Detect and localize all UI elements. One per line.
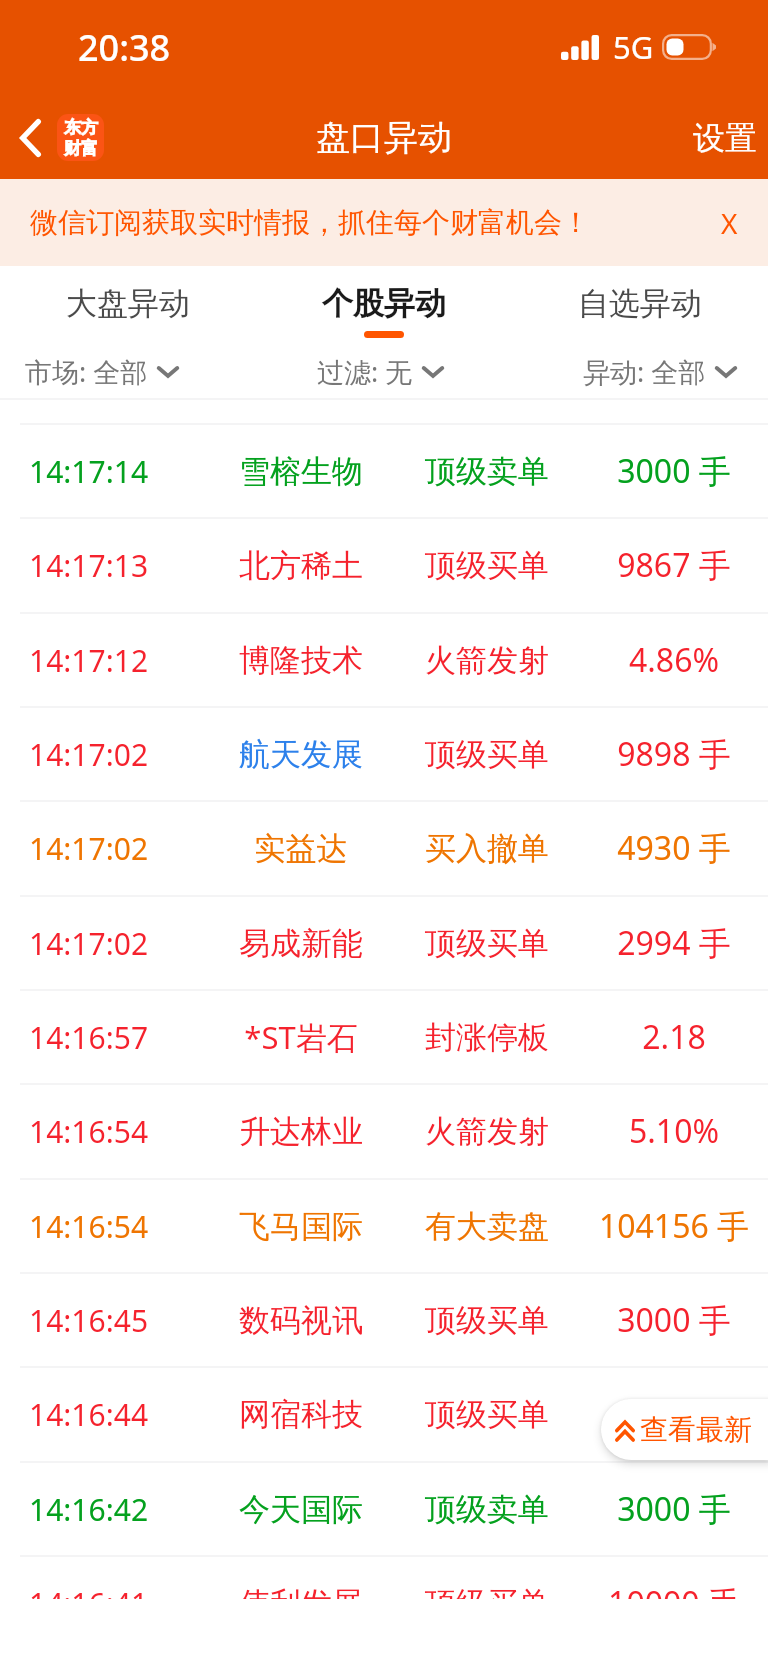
staticText: 2994 手 xyxy=(549,921,768,965)
button[interactable]: 市场: 全部 xyxy=(0,344,232,398)
staticText: 9898 手 xyxy=(549,732,768,776)
button[interactable]: 14:16:42 xyxy=(0,1462,768,1556)
staticText: 火箭发射 xyxy=(362,1112,612,1151)
button[interactable]: 14:17:14 xyxy=(0,424,768,518)
staticText: 伟利发展 xyxy=(176,1584,426,1599)
staticText: 查看最新 xyxy=(640,1412,752,1447)
staticText: 航天发展 xyxy=(176,735,426,774)
button[interactable]: Back xyxy=(14,108,110,167)
button[interactable]: 14:17:02 xyxy=(0,801,768,895)
button[interactable]: 14:16:45 xyxy=(0,1273,768,1367)
staticText: 3000 手 xyxy=(549,1298,768,1342)
staticText: 设置 xyxy=(693,118,757,158)
staticText: 封涨停板 xyxy=(362,1018,612,1057)
staticText: 14:16:41 xyxy=(29,1583,149,1599)
staticText: 顶级买单 xyxy=(362,735,612,774)
staticText: 3000 手 xyxy=(549,1487,768,1531)
button[interactable]: 14:17:02 xyxy=(0,707,768,801)
button[interactable]: 设置 xyxy=(669,108,768,168)
staticText: 东方 xyxy=(64,117,98,138)
staticText: 个股异动 xyxy=(322,284,446,323)
staticText: 顶级买单 xyxy=(362,924,612,963)
staticText: 升达林业 xyxy=(176,1112,426,1151)
staticText: 异动: 全部 xyxy=(583,353,706,390)
staticText: 2.18 xyxy=(549,1015,768,1059)
staticText: 14:17:14 xyxy=(29,451,149,492)
staticText: 有大卖盘 xyxy=(362,1207,612,1246)
staticText: 顶级卖单 xyxy=(362,1490,612,1529)
staticText: 顶级买单 xyxy=(362,1395,612,1434)
button[interactable]: 14:17:12 xyxy=(0,613,768,707)
staticText: 网宿科技 xyxy=(176,1395,426,1434)
staticText: 顶级买单 xyxy=(362,546,612,585)
staticText: 14:17:02 xyxy=(29,734,149,775)
staticText: 易成新能 xyxy=(176,924,426,963)
staticText: 飞马国际 xyxy=(176,1207,426,1246)
staticText: 14:16:45 xyxy=(29,1300,149,1341)
staticText: 微信订阅获取实时情报，抓住每个财富机会！ xyxy=(30,205,590,240)
button[interactable]: 查看最新 xyxy=(601,1399,768,1460)
staticText: 14:16:54 xyxy=(29,1206,149,1247)
staticText: 北方稀土 xyxy=(176,546,426,585)
button[interactable]: 14:16:41 xyxy=(0,1556,768,1599)
staticText: 盘口异动 xyxy=(316,116,452,159)
staticText: *ST岩石 xyxy=(176,1016,426,1058)
staticText: 雪榕生物 xyxy=(176,452,426,491)
staticText: 自选异动 xyxy=(578,284,702,323)
staticText: 顶级买单 xyxy=(362,1301,612,1340)
staticText: 9867 手 xyxy=(549,543,768,587)
staticText: 10000 手 xyxy=(549,1581,768,1599)
staticText: 今天国际 xyxy=(176,1490,426,1529)
staticText: 4.86% xyxy=(549,638,768,682)
staticText: 14:17:13 xyxy=(29,545,149,586)
staticText: 104156 手 xyxy=(549,1204,768,1248)
staticText: 5G xyxy=(613,26,654,68)
button[interactable]: 个股异动 xyxy=(256,266,512,344)
staticText: 过滤: 无 xyxy=(317,353,413,390)
staticText: 14:16:42 xyxy=(29,1489,149,1530)
button[interactable]: 14:16:54 xyxy=(0,1084,768,1178)
button[interactable]: 14:16:44 xyxy=(0,1367,768,1461)
staticText: 14:16:44 xyxy=(29,1394,149,1435)
button[interactable]: 14:16:54 xyxy=(0,1179,768,1273)
staticText: 3000 手 xyxy=(549,449,768,493)
staticText: 5.10% xyxy=(549,1109,768,1153)
button[interactable]: 异动: 全部 xyxy=(530,344,768,398)
button[interactable]: 14:16:57 xyxy=(0,990,768,1084)
button[interactable]: 过滤: 无 xyxy=(250,344,510,398)
staticText: 实益达 xyxy=(176,829,426,868)
staticText: 火箭发射 xyxy=(362,641,612,680)
staticText: 14:17:12 xyxy=(29,640,149,681)
staticText: 14:16:57 xyxy=(29,1017,149,1058)
staticText: 数码视讯 xyxy=(176,1301,426,1340)
button[interactable]: 14:17:02 xyxy=(0,896,768,990)
button[interactable]: Close banner xyxy=(691,190,768,256)
button[interactable]: 大盘异动 xyxy=(0,266,256,344)
button[interactable]: 14:17:13 xyxy=(0,518,768,612)
staticText: 顶级买单 xyxy=(362,1584,612,1599)
staticText xyxy=(549,1392,768,1436)
staticText: 4930 手 xyxy=(549,826,768,870)
staticText: 14:17:02 xyxy=(29,828,149,869)
button[interactable]: 自选异动 xyxy=(512,266,768,344)
staticText: 财富 xyxy=(64,138,98,159)
staticText: 20:38 xyxy=(78,23,171,72)
staticText: 大盘异动 xyxy=(66,284,190,323)
staticText: 博隆技术 xyxy=(176,641,426,680)
staticText: X xyxy=(721,204,738,242)
staticText: 顶级卖单 xyxy=(362,452,612,491)
staticText: 14:16:54 xyxy=(29,1111,149,1152)
staticText: 市场: 全部 xyxy=(25,353,148,390)
staticText: 买入撤单 xyxy=(362,829,612,868)
staticText: 14:17:02 xyxy=(29,923,149,964)
